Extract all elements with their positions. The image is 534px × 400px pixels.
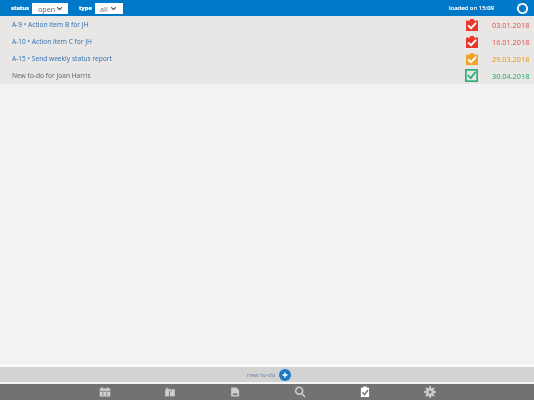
button[interactable]: A-10 • Action item C for JH (0, 33, 534, 50)
staticText: 29.03.2018 (492, 54, 530, 64)
button[interactable]: Calendar (89, 384, 121, 400)
button[interactable]: A-15 • Send weekly status report (0, 50, 534, 67)
staticText: A-9 • Action item B for JH (12, 20, 89, 29)
staticText: loaded on 15:09 (449, 4, 495, 12)
button[interactable]: all (95, 3, 123, 14)
staticText: 03.01.2018 (492, 20, 530, 30)
button[interactable]: Settings (414, 384, 446, 400)
button[interactable]: open (32, 3, 68, 14)
staticText: A-15 • Send weekly status report (12, 54, 112, 63)
staticText: all (100, 4, 108, 14)
button[interactable]: Refresh (515, 1, 529, 15)
staticText: 30.04.2018 (492, 71, 530, 81)
button[interactable]: Projects (154, 384, 186, 400)
staticText: status (11, 4, 30, 12)
staticText: new to-do (247, 371, 276, 379)
button[interactable]: To-dos (349, 384, 381, 400)
button[interactable]: Documents (219, 384, 251, 400)
staticText: open (38, 4, 56, 14)
button[interactable]: New to-do for Joan Harris (0, 67, 534, 84)
button[interactable]: A-9 • Action item B for JH (0, 16, 534, 33)
staticText: New to-do for Joan Harris (12, 71, 91, 80)
staticText: type (79, 4, 92, 12)
button[interactable]: Search (284, 384, 316, 400)
staticText: A-10 • Action item C for JH (12, 37, 92, 46)
button[interactable]: new to-do (244, 368, 294, 382)
staticText: 16.01.2018 (492, 37, 530, 47)
